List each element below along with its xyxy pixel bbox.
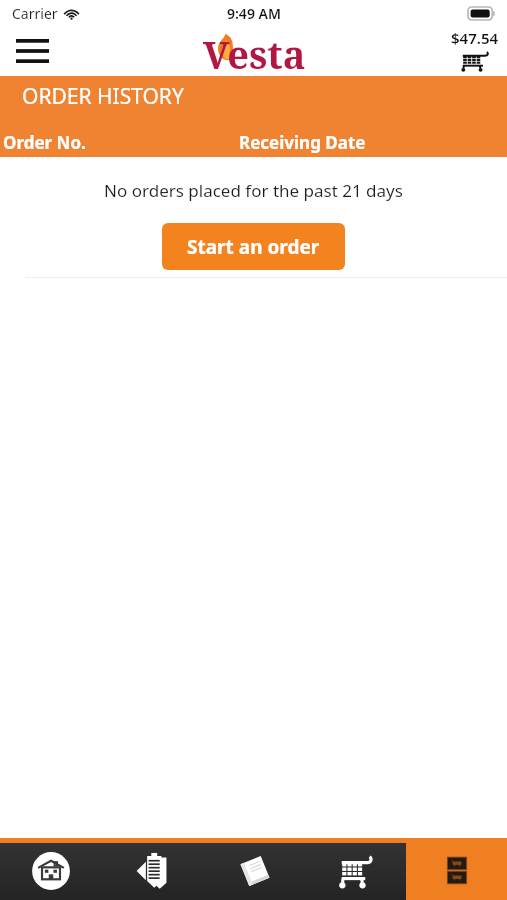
button[interactable]: Catalog	[204, 838, 305, 900]
staticText: 9:49 AM	[227, 4, 281, 23]
button[interactable]: Cart	[451, 28, 499, 74]
staticText: No orders placed for the past 21 days	[104, 179, 403, 202]
button[interactable]: Orders	[102, 838, 204, 900]
staticText: ORDER HISTORY	[22, 82, 184, 111]
button[interactable]: Cart	[305, 838, 406, 900]
staticText: Vesta	[203, 28, 306, 78]
button[interactable]: Order History	[406, 838, 507, 900]
staticText: Receiving Date	[239, 131, 366, 154]
staticText: Start an order	[187, 234, 320, 260]
staticText: Order No.	[3, 131, 86, 154]
button[interactable]: Menu	[10, 31, 54, 71]
button[interactable]: Home	[0, 838, 102, 900]
staticText: Carrier	[12, 4, 58, 23]
button[interactable]: Start an order	[162, 223, 345, 270]
staticText: $47.54	[451, 28, 499, 48]
